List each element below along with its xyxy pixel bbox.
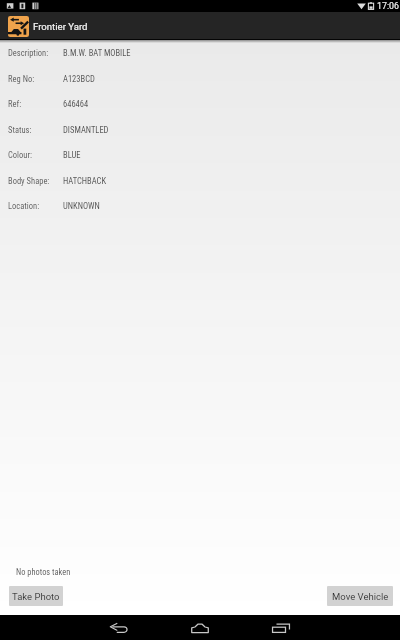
staticText: Body Shape: (8, 176, 50, 186)
staticText: Move Vehicle (332, 591, 389, 602)
button[interactable]: Move Vehicle (327, 586, 393, 606)
staticText: HATCHBACK (63, 176, 107, 186)
button[interactable]: Recent apps (263, 615, 299, 640)
staticText: Frontier Yard (33, 21, 88, 32)
staticText: DISMANTLED (63, 125, 109, 135)
staticText: 17:06 (377, 1, 399, 11)
button[interactable]: Back (101, 615, 137, 640)
button[interactable]: Take Photo (9, 586, 63, 606)
staticText: Description: (8, 48, 49, 58)
staticText: Reg No: (8, 74, 35, 84)
staticText: UNKNOWN (63, 201, 100, 211)
staticText: Take Photo (12, 591, 60, 602)
staticText: Status: (8, 125, 32, 135)
staticText: Location: (8, 201, 40, 211)
staticText: BLUE (63, 150, 81, 160)
staticText: Colour: (8, 150, 32, 160)
staticText: A123BCD (63, 74, 95, 84)
staticText: 646464 (63, 99, 89, 109)
staticText: No photos taken (16, 567, 71, 577)
staticText: Ref: (8, 99, 22, 109)
button[interactable]: Home (182, 615, 218, 640)
staticText: B.M.W. BAT MOBILE (63, 48, 131, 58)
